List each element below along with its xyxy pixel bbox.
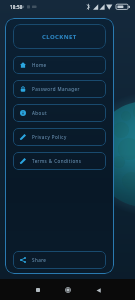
staticText: About <box>32 110 48 116</box>
button[interactable]: Password Manager <box>13 80 106 98</box>
staticText: Share <box>32 257 47 263</box>
button[interactable]: Terms & Conditions <box>13 152 106 170</box>
button[interactable]: CLOCKNET <box>13 24 106 49</box>
staticText: Home <box>32 62 47 68</box>
button[interactable]: Recents <box>30 282 46 298</box>
staticText: Password Manager <box>32 86 80 92</box>
button[interactable]: Back <box>90 282 106 298</box>
staticText: Terms & Conditions <box>32 158 82 164</box>
button[interactable]: Privacy Policy <box>13 128 106 146</box>
button[interactable]: Home <box>60 282 76 298</box>
staticText: Privacy Policy <box>32 134 67 140</box>
staticText: 18:58 <box>10 4 23 10</box>
button[interactable]: Share <box>13 251 106 269</box>
button[interactable]: Home <box>13 56 106 74</box>
staticText: CLOCKNET <box>42 33 77 41</box>
button[interactable]: About <box>13 104 106 122</box>
